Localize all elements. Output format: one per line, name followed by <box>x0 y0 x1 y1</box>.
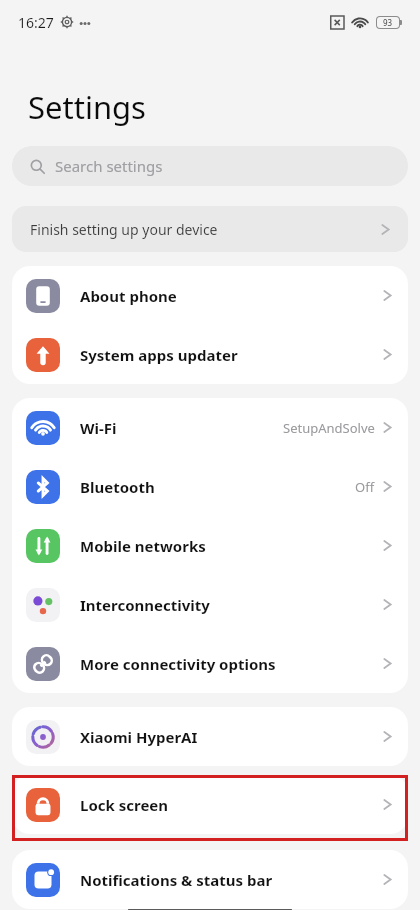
button[interactable]: Finish setting up your device <box>12 206 408 252</box>
staticText: Interconnectivity <box>80 595 210 615</box>
staticText: Finish setting up your device <box>30 220 218 239</box>
button[interactable]: System apps updater <box>12 325 408 384</box>
staticText: Off <box>355 478 375 496</box>
staticText: SetupAndSolve <box>283 419 375 437</box>
staticText: About phone <box>80 286 177 306</box>
staticText: Search settings <box>55 156 163 176</box>
staticText: Xiaomi HyperAI <box>80 727 198 747</box>
button[interactable]: Search settings <box>12 146 408 186</box>
staticText: Lock screen <box>80 795 169 815</box>
button[interactable]: Wi-Fi <box>12 398 408 457</box>
staticText: 93 <box>383 17 393 28</box>
button[interactable]: Notifications & status bar <box>12 850 408 909</box>
button[interactable]: More connectivity options <box>12 634 408 693</box>
button[interactable]: Interconnectivity <box>12 575 408 634</box>
button[interactable]: Bluetooth <box>12 457 408 516</box>
staticText: 16:27 <box>18 13 54 32</box>
staticText: Bluetooth <box>80 477 155 497</box>
staticText: Mobile networks <box>80 536 206 556</box>
button[interactable]: About phone <box>12 266 408 325</box>
button[interactable]: Xiaomi HyperAI <box>12 707 408 766</box>
staticText: Settings <box>28 86 146 128</box>
staticText: Notifications & status bar <box>80 870 273 890</box>
staticText: Wi-Fi <box>80 418 117 438</box>
button[interactable]: Lock screen <box>12 775 408 834</box>
staticText: More connectivity options <box>80 654 276 674</box>
button[interactable]: Mobile networks <box>12 516 408 575</box>
staticText: System apps updater <box>80 345 238 365</box>
